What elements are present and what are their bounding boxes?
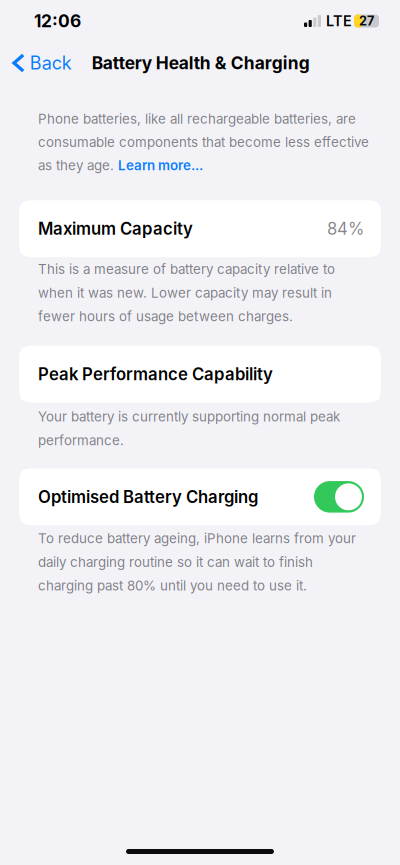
staticText: Back [30, 52, 72, 74]
button[interactable]: Optimised Battery Charging [0, 468, 400, 525]
staticText: 12:06 [34, 10, 81, 31]
staticText: This is a measure of battery capacity re… [38, 261, 335, 325]
staticText: Your battery is currently supporting nor… [38, 409, 340, 448]
staticText: 27 [359, 13, 374, 29]
button[interactable]: Back [0, 42, 92, 84]
button[interactable]: Optimised Battery Charging [314, 481, 364, 513]
staticText: Maximum Capacity [38, 219, 193, 239]
button[interactable]: Maximum Capacity [0, 200, 400, 257]
staticText: Peak Performance Capability [38, 364, 273, 384]
staticText: Optimised Battery Charging [38, 487, 258, 507]
button[interactable]: Peak Performance Capability [0, 346, 400, 403]
staticText: To reduce battery ageing, iPhone learns … [38, 530, 356, 594]
staticText: Battery Health & Charging [92, 52, 310, 73]
staticText: 84% [327, 219, 364, 239]
staticText: Phone batteries, like all rechargeable b… [38, 111, 369, 173]
staticText: LTE [326, 12, 352, 30]
